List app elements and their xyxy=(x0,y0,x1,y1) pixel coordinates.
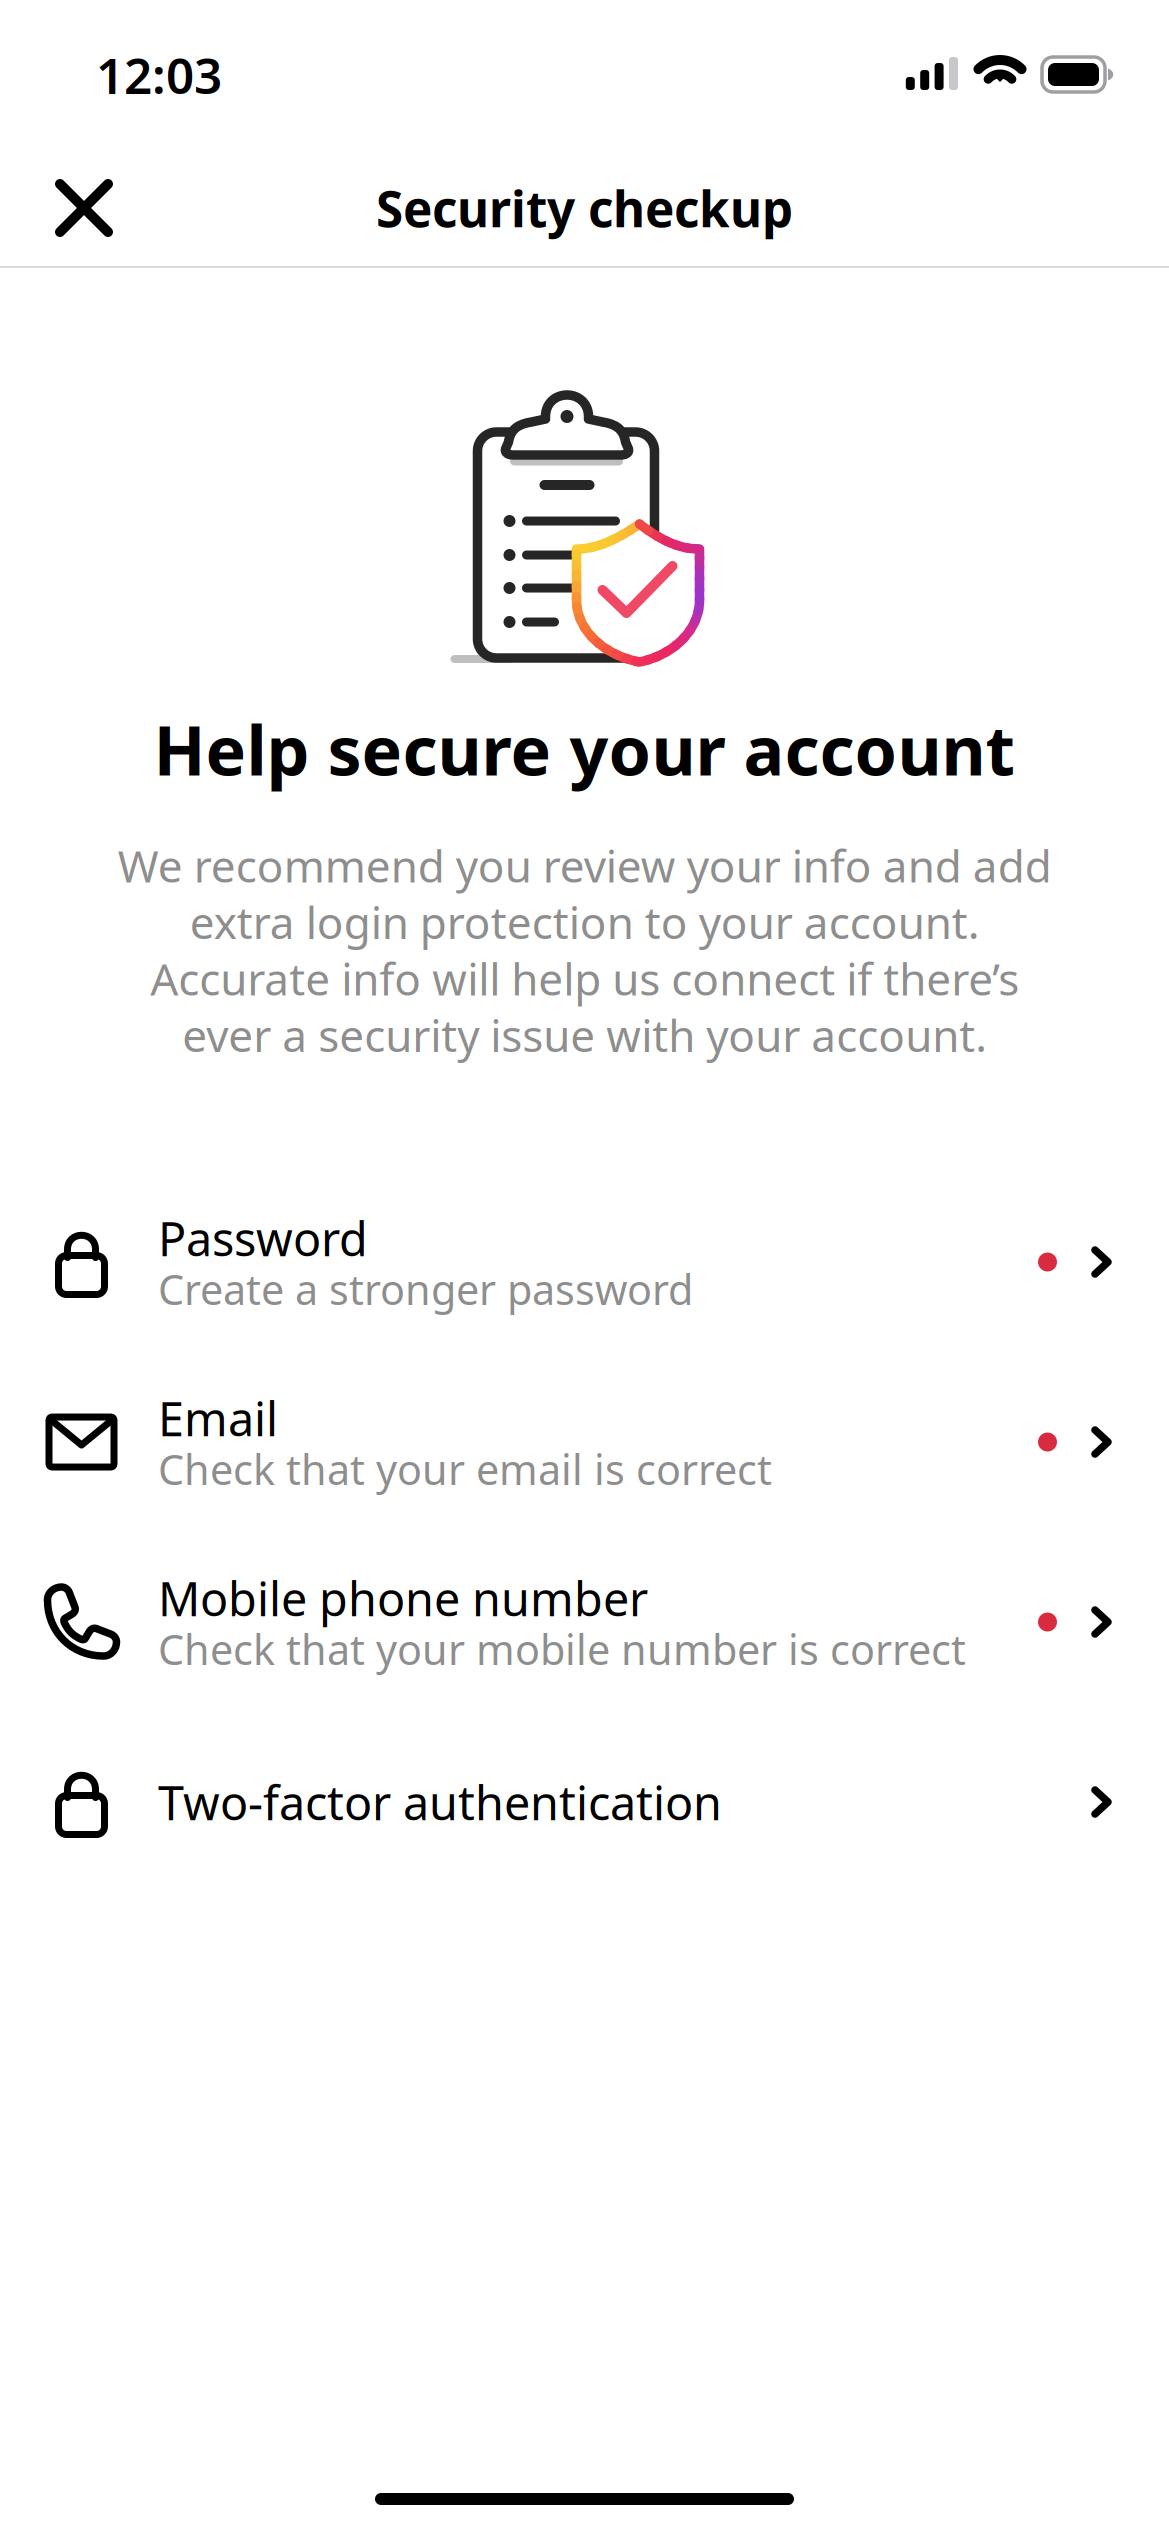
staticText: Two-factor authentication xyxy=(158,1771,722,1833)
staticText: Password xyxy=(158,1207,368,1269)
staticText: Email xyxy=(158,1387,278,1449)
staticText: 12:03 xyxy=(96,42,222,107)
staticText: Create a stronger password xyxy=(158,1262,693,1316)
staticText: Help secure your account xyxy=(153,704,1015,794)
staticText: Check that your mobile number is correct xyxy=(158,1622,966,1676)
staticText: Security checkup xyxy=(376,175,793,241)
staticText: Mobile phone number xyxy=(158,1567,648,1629)
button[interactable]: Email xyxy=(0,1352,1169,1532)
staticText: We recommend you review your info and ad… xyxy=(117,836,1051,1064)
button[interactable]: Mobile phone number xyxy=(0,1532,1169,1712)
button[interactable]: Two-factor authentication xyxy=(0,1712,1169,1892)
button[interactable]: Close xyxy=(0,148,168,268)
staticText: Check that your email is correct xyxy=(158,1442,772,1496)
button[interactable]: Password xyxy=(0,1172,1169,1352)
